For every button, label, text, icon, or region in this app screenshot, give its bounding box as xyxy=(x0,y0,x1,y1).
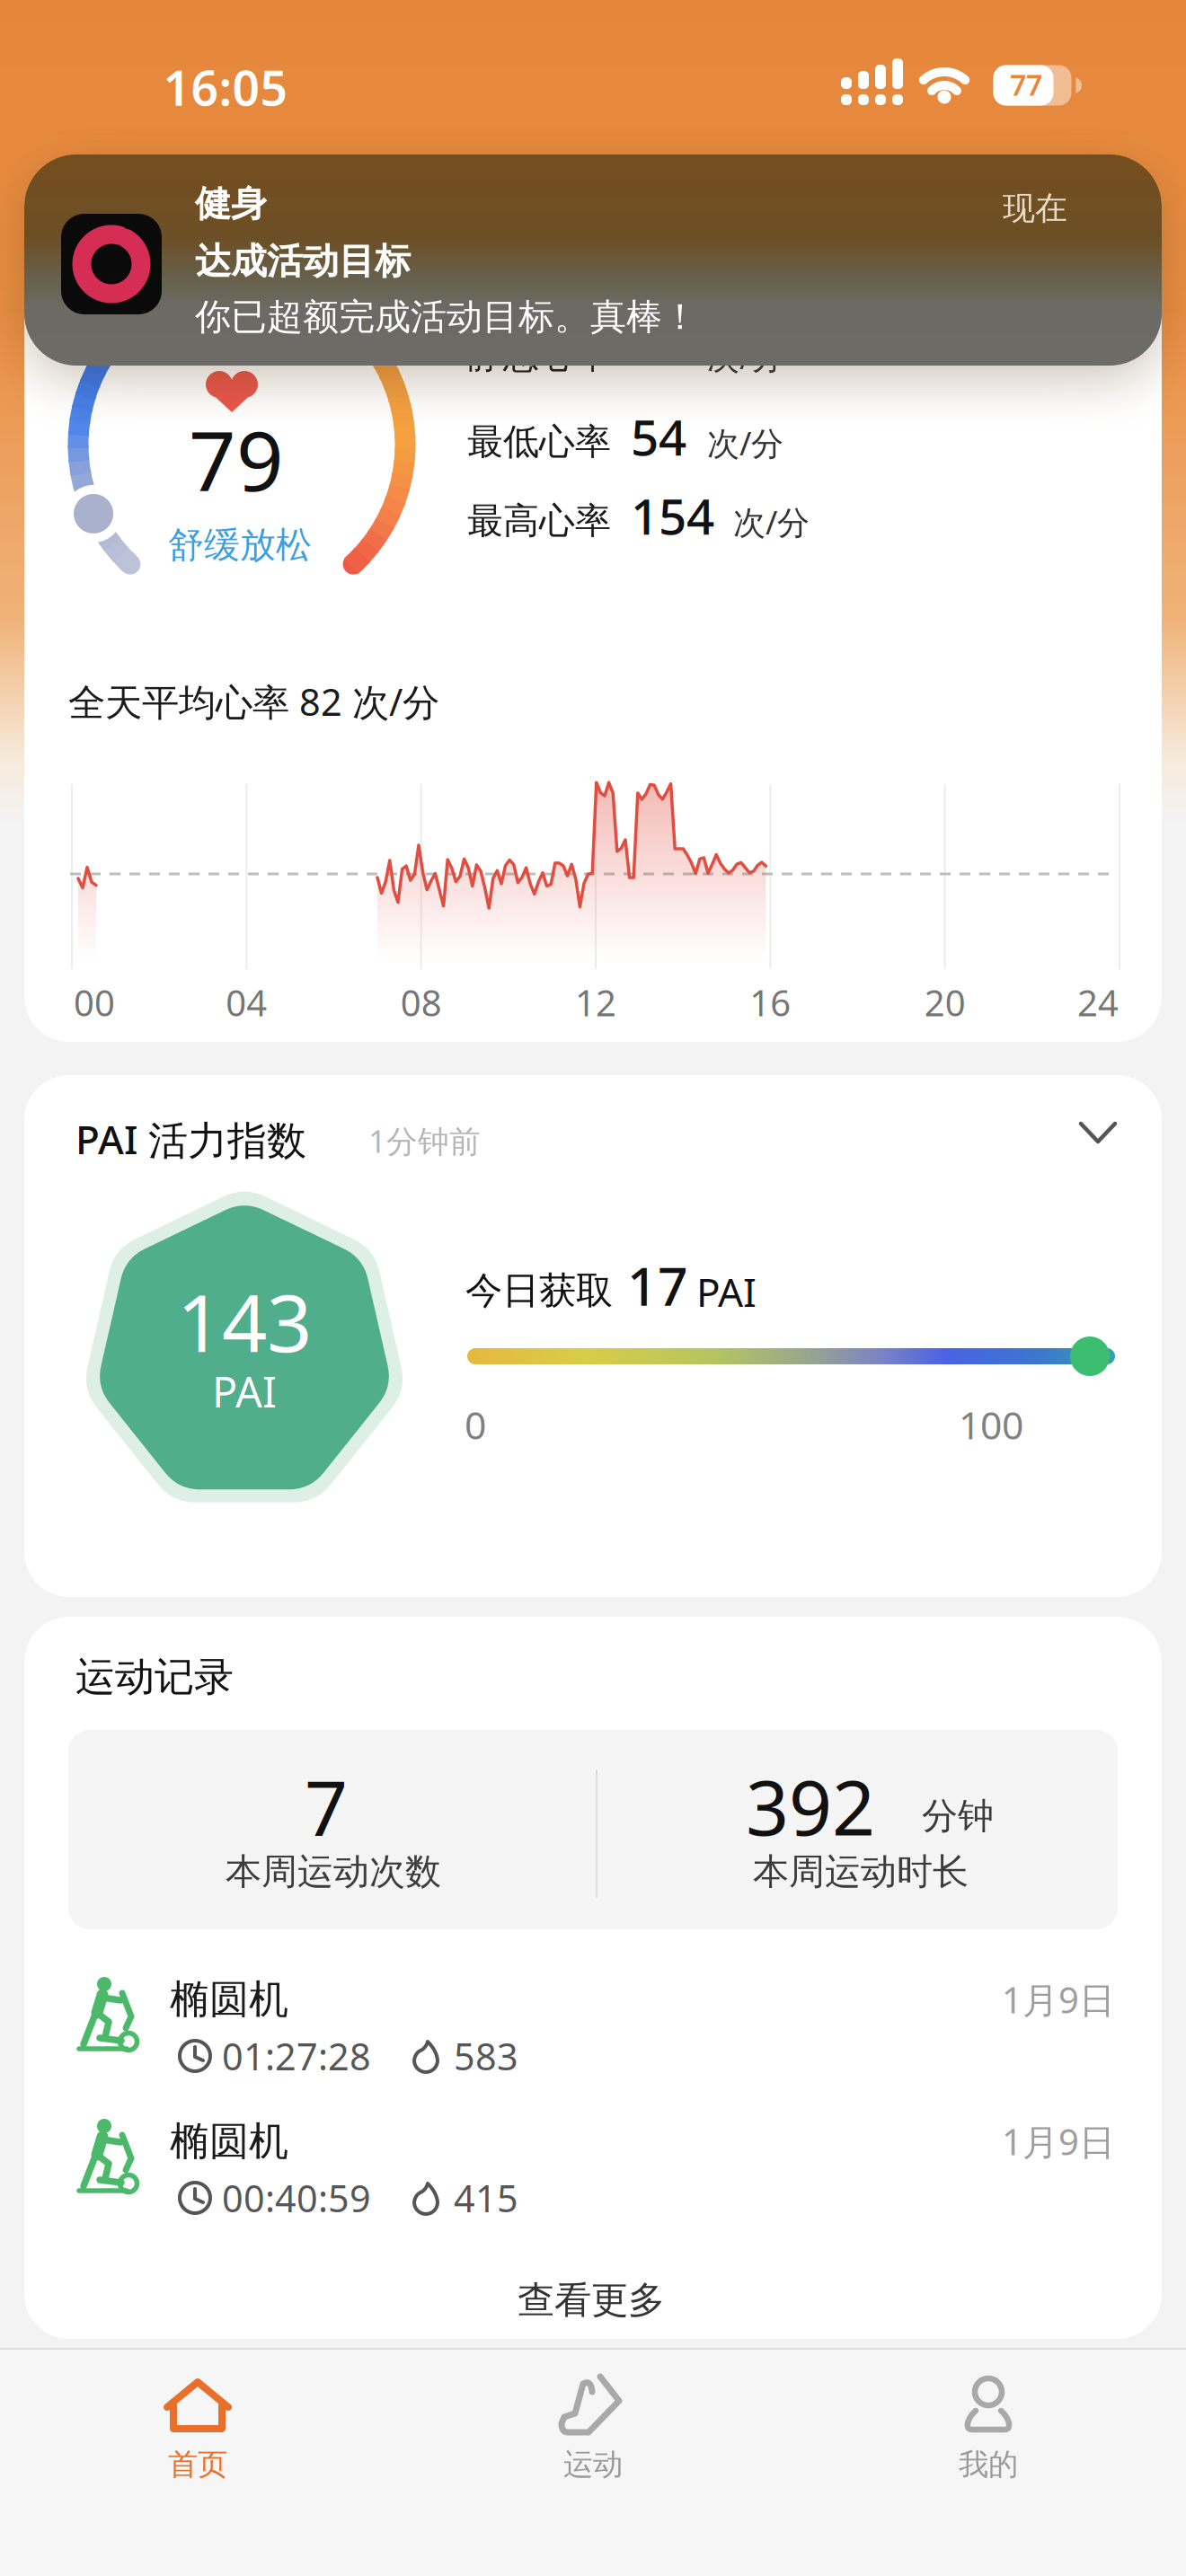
staticText: 143 xyxy=(177,1269,312,1374)
staticText: 达成活动目标 xyxy=(195,239,411,283)
staticText: 1月9日 xyxy=(1002,1975,1115,2023)
staticText: 20 xyxy=(924,978,966,1026)
button[interactable] xyxy=(9,2348,386,2572)
staticText: 1月9日 xyxy=(1002,2117,1115,2165)
staticText: 54 xyxy=(631,404,686,469)
staticText: 1分钟前 xyxy=(368,1120,481,1161)
staticText: 24 xyxy=(1077,978,1119,1026)
staticText: 首页 xyxy=(168,2446,227,2483)
staticText: 0 xyxy=(465,1399,486,1450)
staticText: 最低心率 xyxy=(467,420,611,464)
staticText: 08 xyxy=(400,978,442,1026)
staticText: 椭圆机 xyxy=(170,2117,288,2166)
staticText: -- xyxy=(631,318,663,383)
button[interactable] xyxy=(1044,1088,1152,1178)
staticText: 415 xyxy=(454,2173,518,2223)
staticText: 00:40:59 xyxy=(222,2173,371,2223)
staticText: 154 xyxy=(631,483,714,548)
staticText: 00 xyxy=(74,978,115,1026)
staticText: 04 xyxy=(226,978,267,1026)
staticText: 本周运动时长 xyxy=(753,1850,969,1894)
staticText: 运动记录 xyxy=(75,1653,234,1701)
staticText: 77 xyxy=(1010,65,1042,104)
staticText: 静息心率 xyxy=(467,334,611,378)
button[interactable] xyxy=(800,2348,1177,2572)
staticText: 你已超额完成活动目标。真棒！ xyxy=(195,295,698,339)
staticText: 分钟 xyxy=(922,1794,994,1838)
staticText: 100 xyxy=(959,1399,1023,1450)
button[interactable] xyxy=(404,2348,782,2572)
staticText: 现在 xyxy=(1003,189,1067,228)
staticText: 17 xyxy=(627,1250,688,1320)
staticText: PAI 活力指数 xyxy=(75,1113,306,1165)
staticText: 7 xyxy=(305,1756,348,1856)
staticText: 次/分 xyxy=(707,335,783,378)
staticText: 运动 xyxy=(563,2446,623,2483)
staticText: 查看更多 xyxy=(518,2277,665,2323)
staticText: 01:27:28 xyxy=(222,2031,371,2081)
button[interactable]: 椭圆机 xyxy=(24,2099,1162,2239)
staticText: 椭圆机 xyxy=(170,1975,288,2024)
staticText: 健身 xyxy=(195,182,267,226)
staticText: 次/分 xyxy=(707,421,783,464)
staticText: 392 xyxy=(746,1756,875,1856)
button[interactable]: 健身 xyxy=(24,154,1162,366)
staticText: 舒缓放松 xyxy=(168,523,312,567)
staticText: 583 xyxy=(454,2031,518,2081)
staticText: 79 xyxy=(189,404,284,514)
staticText: 16 xyxy=(750,978,791,1026)
staticText: 全天平均心率 82 次/分 xyxy=(68,677,439,726)
staticText: 12 xyxy=(575,978,616,1026)
button[interactable]: 查看更多 xyxy=(412,2260,771,2341)
staticText: 16:05 xyxy=(163,55,288,119)
staticText: PAI xyxy=(696,1265,757,1318)
staticText: 最高心率 xyxy=(467,499,611,543)
staticText: 次/分 xyxy=(733,500,810,543)
staticText: 本周运动次数 xyxy=(226,1850,441,1894)
button[interactable]: 椭圆机 xyxy=(24,1957,1162,2097)
staticText: 我的 xyxy=(959,2446,1018,2483)
staticText: PAI xyxy=(212,1363,277,1419)
staticText: 今日获取 xyxy=(465,1268,613,1314)
